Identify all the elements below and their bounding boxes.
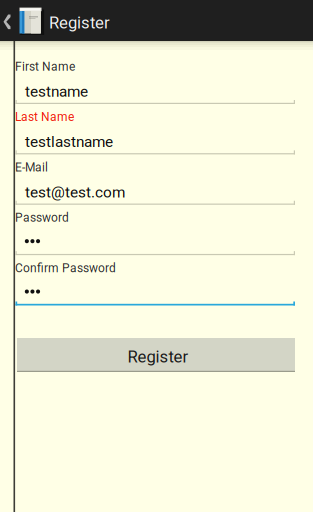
staticText: First Name (15, 59, 75, 74)
staticText: test@test.com (25, 183, 125, 201)
button[interactable]: Register (17, 338, 295, 372)
button[interactable]: Back (0, 0, 46, 41)
staticText: Register (49, 13, 110, 32)
staticText: Password (15, 211, 69, 225)
staticText: testname (25, 82, 88, 100)
staticText: Confirm Password (15, 261, 116, 275)
staticText: Register (127, 347, 188, 366)
staticText: E-Mail (15, 160, 48, 174)
staticText: Last Name (15, 110, 74, 124)
staticText: testlastname (25, 133, 113, 151)
